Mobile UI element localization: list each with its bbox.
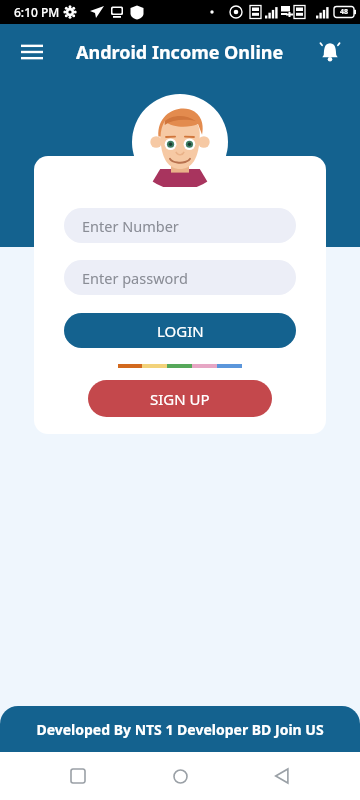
button[interactable]: Recent apps bbox=[54, 752, 102, 800]
button[interactable]: Home bbox=[156, 752, 204, 800]
button[interactable]: Back bbox=[258, 752, 306, 800]
staticText: Android Income Online bbox=[76, 40, 284, 65]
button[interactable]: LOGIN bbox=[64, 313, 296, 348]
staticText: 6:10 PM bbox=[14, 4, 60, 20]
button[interactable]: Enter password bbox=[64, 260, 296, 295]
staticText: LOGIN bbox=[157, 321, 204, 341]
button[interactable]: Open navigation menu bbox=[8, 28, 56, 76]
button[interactable]: Enter Number bbox=[64, 208, 296, 243]
staticText: SIGN UP bbox=[150, 389, 210, 409]
staticText: Developed By NTS 1 Developer BD Join US bbox=[36, 720, 324, 739]
button[interactable]: SIGN UP bbox=[88, 380, 272, 417]
button[interactable]: Developed By NTS 1 Developer BD Join US bbox=[0, 706, 360, 752]
staticText: Enter Number bbox=[82, 216, 179, 236]
staticText: 48 bbox=[340, 7, 349, 17]
staticText: Enter password bbox=[82, 268, 188, 288]
button[interactable]: Notifications bbox=[308, 30, 352, 74]
